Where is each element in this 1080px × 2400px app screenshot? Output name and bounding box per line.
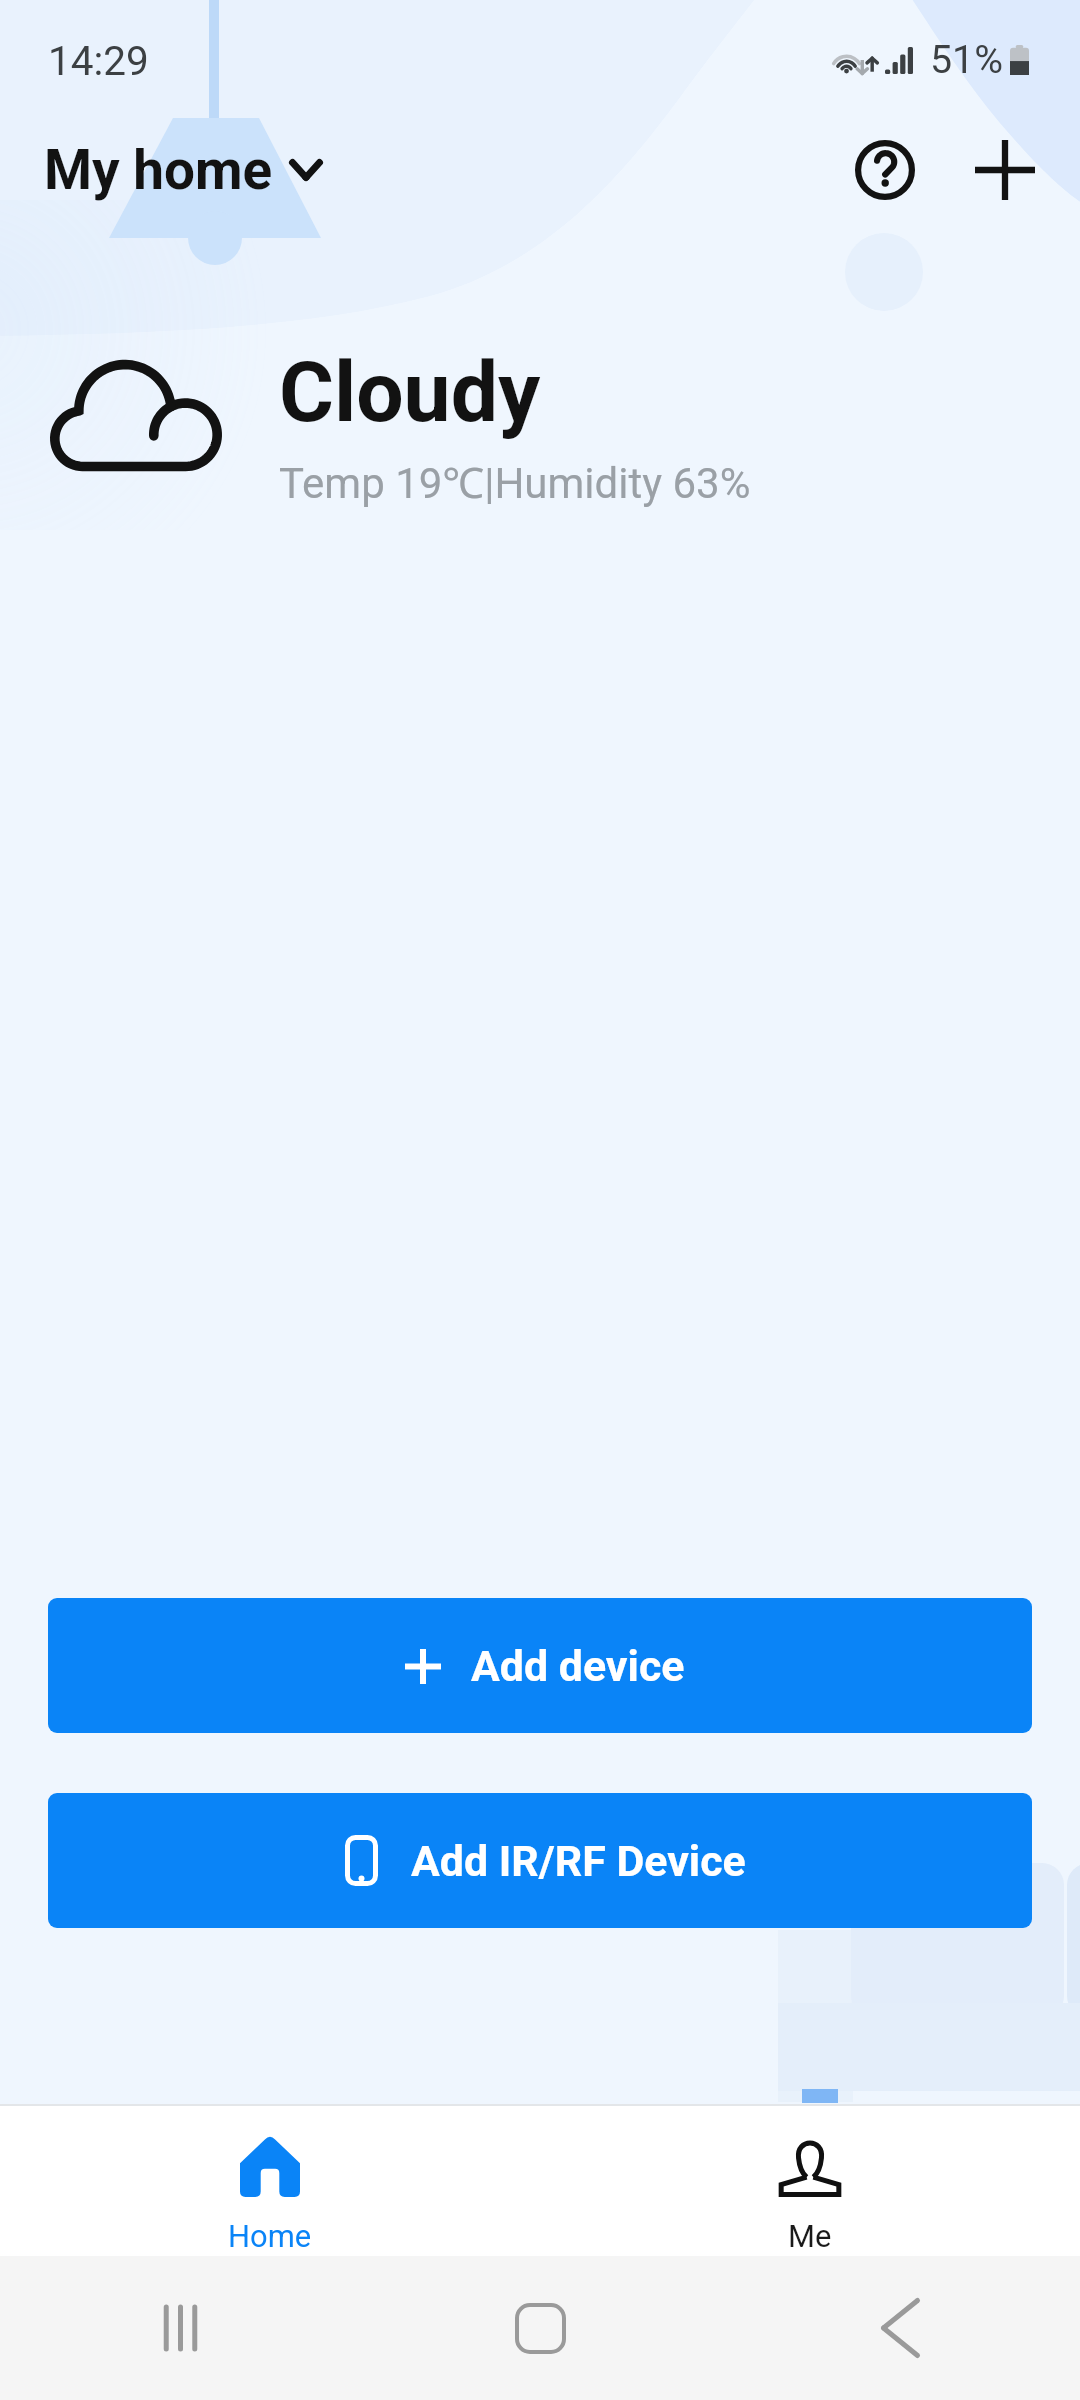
staticText: My home (44, 138, 273, 202)
staticText: Add IR/RF Device (411, 1836, 746, 1886)
staticText: Me (788, 2218, 832, 2254)
button[interactable]: Home (0, 2106, 540, 2256)
staticText: 14:29 (48, 37, 149, 84)
staticText: 51% (930, 37, 1003, 83)
button[interactable]: Me (540, 2106, 1080, 2256)
button[interactable]: Add (939, 116, 1071, 224)
staticText: Home (228, 2218, 312, 2254)
staticText: Temp 19℃|Humidity 63% (279, 453, 751, 510)
button[interactable]: My home (44, 138, 323, 202)
staticText: Add device (471, 1641, 685, 1691)
button[interactable]: Add IR/RF Device (48, 1793, 1032, 1928)
staticText: Cloudy (279, 343, 541, 441)
button[interactable]: Add device (48, 1598, 1032, 1733)
button[interactable]: Help (819, 116, 951, 224)
